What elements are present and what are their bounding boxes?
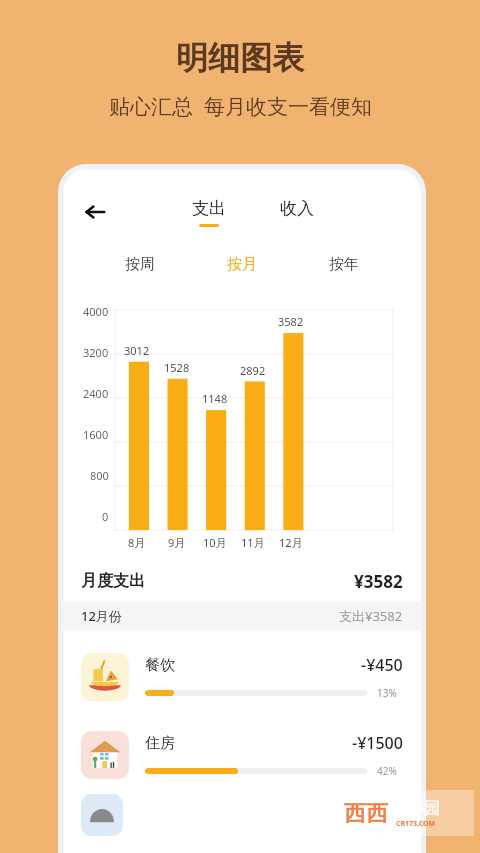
staticText: 1600 [83,427,109,442]
button[interactable]: 餐饮 [63,638,421,716]
button[interactable]: Back [77,194,113,230]
staticText: 4000 [83,304,109,319]
staticText: 12月份 [81,607,122,625]
staticText: 收入 [280,198,314,219]
button[interactable]: 按月 [217,251,267,278]
staticText: 10月 [203,535,227,550]
button[interactable]: 按年 [319,251,369,278]
staticText: -¥450 [361,654,403,676]
staticText: 1148 [202,391,228,406]
button[interactable]: 收入 [274,198,320,227]
staticText: 餐饮 [145,656,175,675]
staticText: 贴心汇总 每月收支一看便知 [109,92,372,121]
staticText: 软件园 [392,799,440,819]
button[interactable]: 住房 [63,716,421,794]
staticText: 按周 [125,255,155,274]
staticText: 2892 [240,363,266,378]
staticText: 8月 [128,535,146,550]
staticText: 住房 [145,734,175,753]
staticText: 按年 [329,255,359,274]
button[interactable]: 支出 [186,198,232,227]
staticText: 3582 [278,314,304,329]
staticText: 支出¥3582 [339,607,403,625]
staticText: 800 [90,468,109,483]
staticText: 13% [377,686,403,700]
staticText: 支出 [192,198,226,219]
staticText: 1528 [164,360,190,375]
staticText: 11月 [241,535,265,550]
staticText: CR173.COM [396,819,436,829]
staticText: 0 [102,509,109,524]
staticText: 月度支出 [81,571,145,591]
staticText: 9月 [168,535,186,550]
staticText: 明细图表 [176,38,304,78]
staticText: 按月 [227,255,257,274]
staticText: 3012 [124,343,150,358]
staticText: 42% [377,764,403,778]
staticText: ¥3582 [354,570,403,593]
staticText: -¥1500 [352,732,403,754]
staticText: 2400 [83,386,109,401]
staticText: 12月 [279,535,303,550]
button[interactable]: 按周 [115,251,165,278]
staticText: 3200 [83,345,109,360]
staticText: 西西 [344,800,388,828]
